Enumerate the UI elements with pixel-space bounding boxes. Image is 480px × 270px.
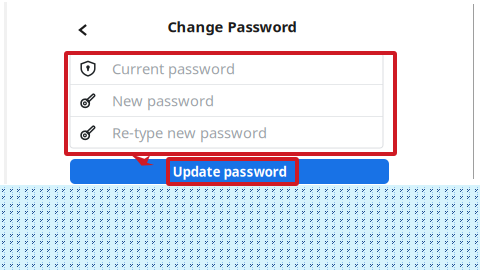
staticText: Update password: [172, 163, 286, 180]
staticText: Re-type new password: [112, 123, 267, 142]
staticText: New password: [112, 91, 214, 110]
staticText: Current password: [112, 59, 235, 78]
button[interactable]: Back: [71, 18, 95, 42]
button[interactable]: New password: [70, 85, 383, 116]
staticText: Change Password: [167, 17, 296, 36]
button[interactable]: Update password: [70, 159, 389, 184]
button[interactable]: Re-type new password: [70, 117, 383, 148]
button[interactable]: Current password: [70, 53, 383, 84]
